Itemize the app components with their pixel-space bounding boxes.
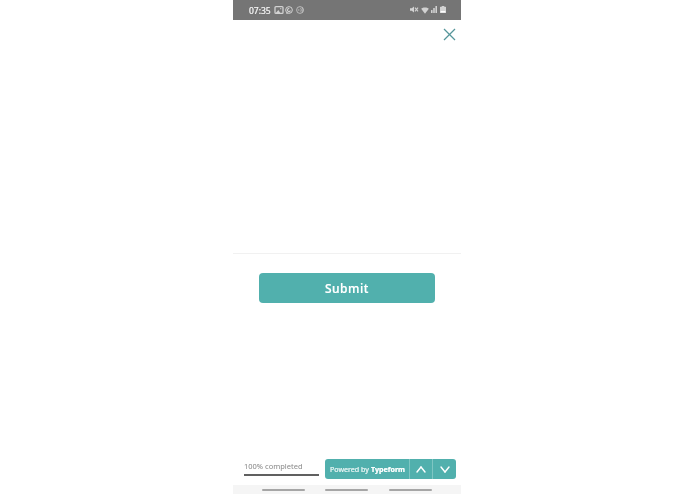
button[interactable]: Powered by bbox=[325, 459, 409, 479]
button[interactable]: Home bbox=[325, 489, 368, 491]
staticText: 100% completed bbox=[244, 461, 303, 471]
button[interactable]: Next question bbox=[433, 459, 456, 479]
button[interactable]: Previous question bbox=[410, 459, 432, 479]
staticText: 07:35 bbox=[249, 5, 271, 17]
staticText: Powered by bbox=[330, 464, 371, 474]
staticText: Submit bbox=[325, 280, 369, 296]
button[interactable]: Recents bbox=[389, 489, 432, 491]
staticText: Typeform bbox=[371, 464, 405, 474]
button[interactable]: Back bbox=[262, 489, 305, 491]
button[interactable]: Close bbox=[436, 21, 462, 47]
button[interactable]: Submit bbox=[259, 273, 435, 303]
